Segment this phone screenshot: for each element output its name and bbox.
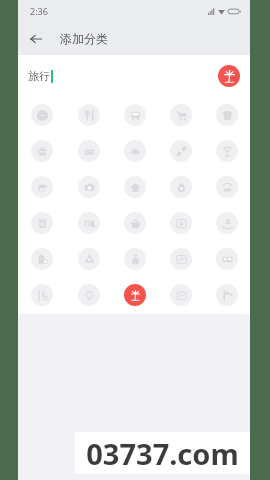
button[interactable]: Category icon 12 — [78, 176, 100, 198]
button[interactable]: Category icon 15 — [216, 176, 238, 198]
button[interactable]: Selected category icon — [218, 65, 240, 87]
button[interactable]: Category icon 11 — [31, 176, 53, 198]
button[interactable]: Category icon 27 — [78, 284, 100, 306]
button[interactable]: Category icon 19 — [170, 212, 192, 234]
button[interactable]: Category icon 7 — [78, 140, 100, 162]
button[interactable]: Category icon 24 — [170, 248, 192, 270]
button[interactable]: Category icon 3 — [124, 104, 146, 126]
staticText: 添加分类 — [60, 31, 108, 46]
staticText: 03737.com — [86, 434, 239, 473]
button[interactable]: Category icon 29 — [170, 284, 192, 306]
button[interactable]: Category icon 5 — [216, 104, 238, 126]
button[interactable]: Category icon 20 — [216, 212, 238, 234]
button[interactable]: Category icon 13 — [124, 176, 146, 198]
button[interactable]: Category icon 8 — [124, 140, 146, 162]
button[interactable]: Back — [23, 26, 49, 52]
button[interactable]: Category icon 30 — [216, 284, 238, 306]
button[interactable]: Category icon 4 — [170, 104, 192, 126]
button[interactable]: Category icon 21 — [31, 248, 53, 270]
staticText: 旅行 — [28, 69, 50, 83]
button[interactable]: Category icon 23 — [124, 248, 146, 270]
button[interactable]: Category icon 17 — [78, 212, 100, 234]
button[interactable]: Category icon 25 — [216, 248, 238, 270]
button[interactable]: Category icon 6 — [31, 140, 53, 162]
button[interactable]: Category icon 16 — [31, 212, 53, 234]
button[interactable]: Category icon 28 — [124, 284, 146, 306]
button[interactable]: Category icon 22 — [78, 248, 100, 270]
button[interactable]: Category icon 2 — [78, 104, 100, 126]
staticText: 2:36 — [30, 5, 48, 17]
button[interactable]: Category icon 1 — [31, 104, 53, 126]
button[interactable]: Category icon 10 — [216, 140, 238, 162]
button[interactable]: Category icon 26 — [31, 284, 53, 306]
button[interactable]: Category icon 9 — [170, 140, 192, 162]
button[interactable]: 旅行 — [28, 69, 218, 83]
button[interactable]: Category icon 18 — [124, 212, 146, 234]
button[interactable]: Category icon 14 — [170, 176, 192, 198]
